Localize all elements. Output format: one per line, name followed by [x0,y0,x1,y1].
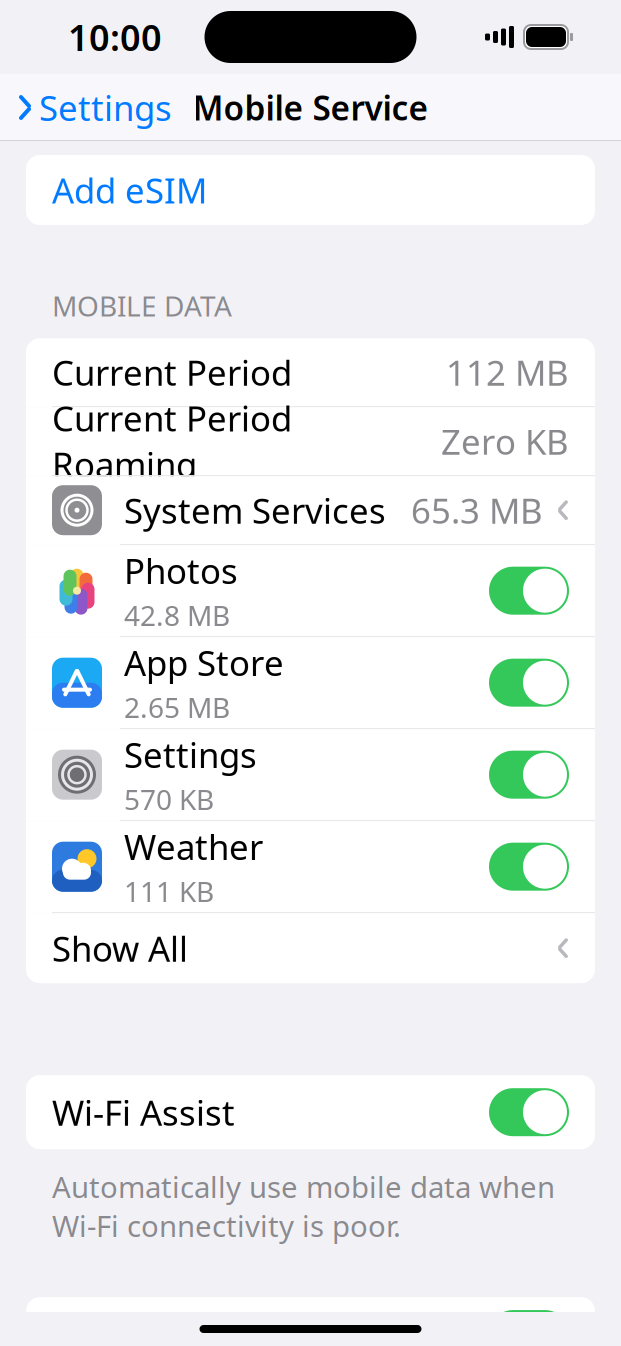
button[interactable]: Current Period [26,338,595,406]
button[interactable]: Wi-Fi Assist [26,1075,595,1149]
staticText: Settings [39,84,172,130]
staticText: Wi-Fi Assist [52,1089,235,1135]
button[interactable]: Weather [26,821,595,912]
staticText: Automatically use mobile data when Wi-Fi… [52,1167,555,1245]
staticText: Zero KB [441,418,569,464]
staticText: Current Period Roaming [52,395,292,487]
button[interactable]: Settings [0,76,172,138]
staticText: 112 MB [446,349,569,395]
staticText: Current Period [52,349,292,395]
button[interactable]: Photos [26,545,595,636]
button[interactable]: Show All [26,913,595,983]
staticText: System Services [124,487,386,533]
button[interactable]: Settings [26,729,595,820]
staticText: 111 KB [124,873,214,910]
staticText: 2.65 MB [124,689,230,726]
staticText: MOBILE DATA [52,287,232,324]
staticText: 570 KB [124,781,214,818]
staticText: App Store [124,640,284,686]
button[interactable]: System Services [26,476,595,544]
staticText: Photos [124,548,238,594]
staticText: 10:00 [68,13,162,61]
staticText: Settings [124,732,257,778]
staticText: iCloud Drive [52,1311,250,1346]
staticText: Add eSIM [52,167,207,213]
button[interactable]: Add eSIM [26,155,595,225]
button[interactable]: App Store [26,637,595,728]
staticText: Mobile Service [192,85,428,130]
button[interactable]: iCloud Drive [26,1297,595,1346]
staticText: Weather [124,824,263,870]
button[interactable]: Current Period Roaming [26,407,595,475]
staticText: 65.3 MB [411,487,543,533]
staticText: 42.8 MB [124,597,230,634]
staticText: Show All [52,925,188,971]
